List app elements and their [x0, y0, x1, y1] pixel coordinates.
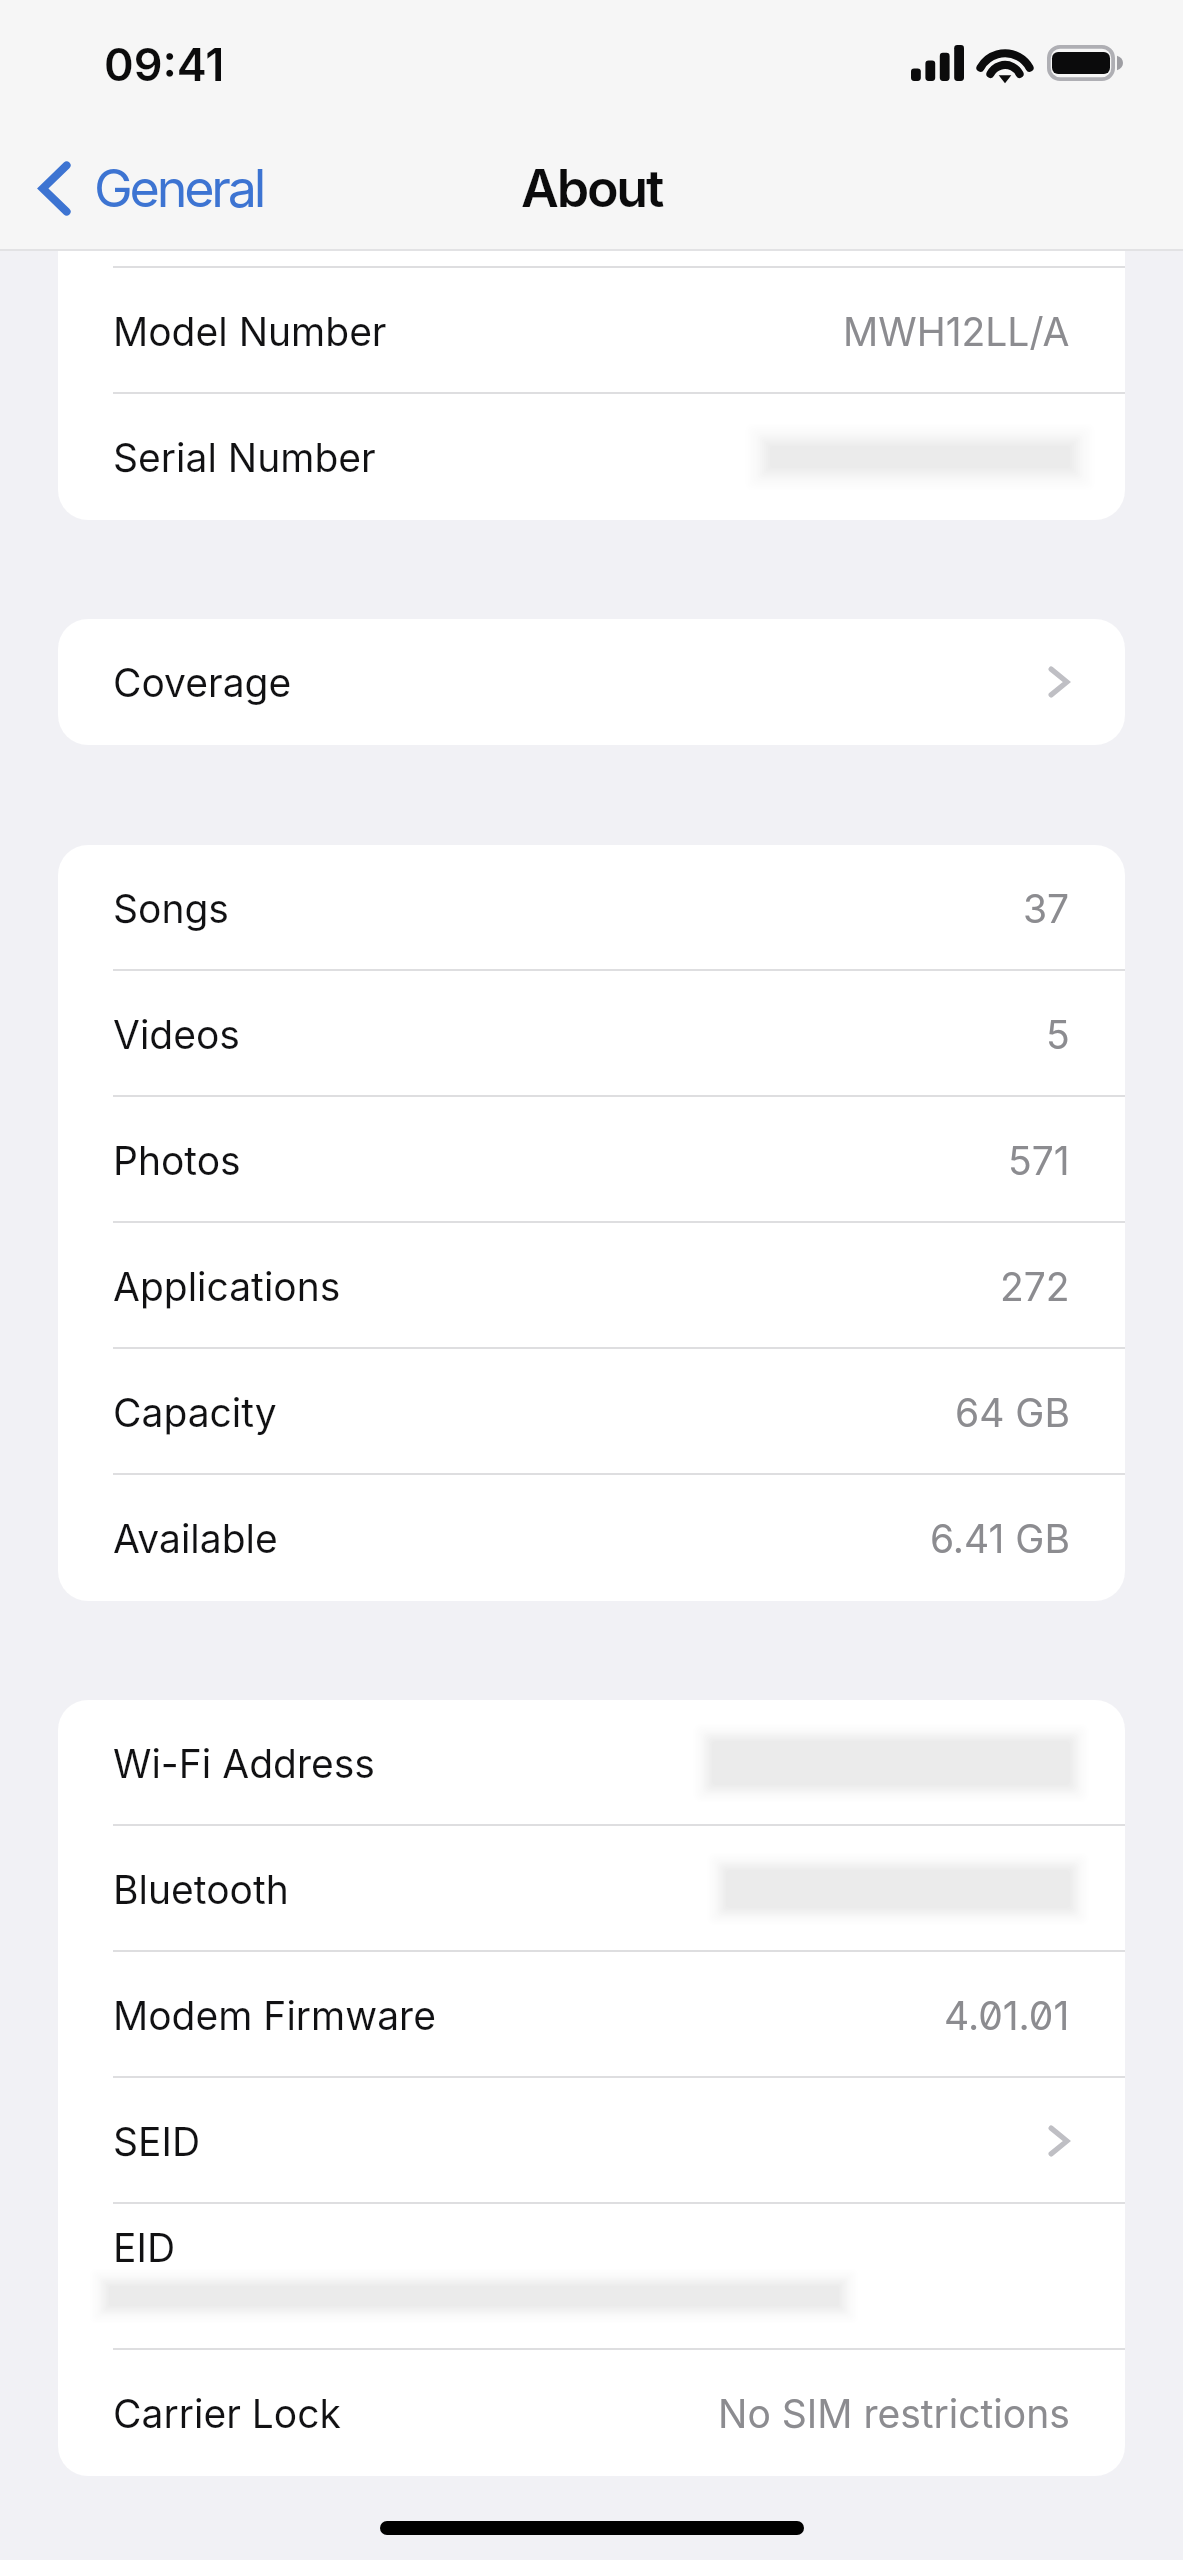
button[interactable]: Serial Number [58, 394, 1125, 520]
button[interactable]: EID [58, 2204, 1125, 2350]
staticText: 6.41 GB [930, 1515, 1070, 1562]
other: Open [1048, 666, 1070, 698]
staticText: About [521, 157, 663, 220]
staticText: General [94, 157, 264, 220]
button[interactable]: Modem Firmware [58, 1952, 1125, 2078]
staticText: 37 [1023, 885, 1070, 932]
other: Wi-Fi [982, 45, 1028, 81]
button[interactable]: Songs [58, 845, 1125, 971]
other: Battery full [1047, 45, 1122, 81]
staticText: Videos [113, 1011, 240, 1058]
staticText: 4.01.01 [944, 1992, 1070, 2039]
staticText: Capacity [113, 1389, 277, 1436]
staticText: EID [113, 2224, 176, 2271]
staticText: Model Number [113, 308, 387, 355]
button[interactable]: Applications [58, 1223, 1125, 1349]
staticText: MWH12LL/A [843, 308, 1070, 355]
staticText: Songs [113, 885, 229, 932]
staticText: Bluetooth [113, 1866, 289, 1913]
other: Back to General [38, 161, 71, 216]
staticText: Coverage [113, 659, 292, 706]
button[interactable]: Available [58, 1475, 1125, 1601]
button[interactable]: Carrier Lock [58, 2350, 1125, 2476]
button[interactable]: Back to General [0, 149, 284, 240]
button[interactable]: Model Number [58, 268, 1125, 394]
staticText: 09:41 [104, 37, 225, 91]
button[interactable]: Coverage [58, 619, 1125, 745]
button[interactable]: Bluetooth [58, 1826, 1125, 1952]
staticText: Photos [113, 1137, 241, 1184]
button[interactable]: Capacity [58, 1349, 1125, 1475]
staticText: 64 GB [955, 1389, 1070, 1436]
staticText: Carrier Lock [113, 2390, 341, 2437]
button[interactable]: SEID [58, 2078, 1125, 2204]
button[interactable]: Photos [58, 1097, 1125, 1223]
staticText: Available [113, 1515, 278, 1562]
other: Open [1048, 2125, 1070, 2157]
other: Cellular signal strength [911, 45, 964, 81]
staticText: 272 [1000, 1263, 1070, 1310]
staticText: SEID [113, 2118, 201, 2165]
button[interactable]: Videos [58, 971, 1125, 1097]
staticText: No SIM restrictions [718, 2390, 1070, 2437]
staticText: Serial Number [113, 434, 376, 481]
staticText: Wi-Fi Address [113, 1740, 375, 1787]
staticText: Modem Firmware [113, 1992, 436, 2039]
staticText: 571 [1008, 1137, 1070, 1184]
button[interactable]: Wi-Fi Address [58, 1700, 1125, 1826]
staticText: Applications [113, 1263, 341, 1310]
staticText: 5 [1046, 1011, 1070, 1058]
